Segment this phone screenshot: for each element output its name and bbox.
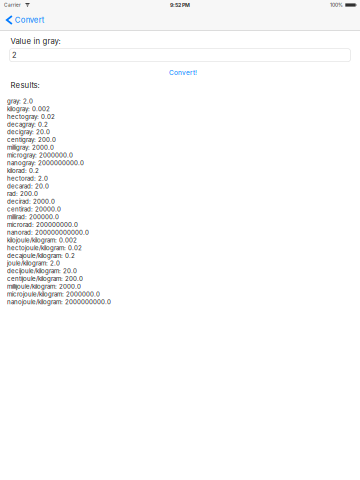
staticText: millijoule/kilogram: 2000.0 (7, 283, 81, 290)
staticText: 9:52 PM (170, 2, 190, 8)
staticText: microrad: 200000000.0 (7, 221, 78, 228)
staticText: decirad: 2000.0 (7, 198, 55, 205)
staticText: millirad: 200000.0 (7, 213, 59, 221)
staticText: kilogray: 0.002 (7, 105, 50, 113)
staticText: 100% (330, 2, 343, 8)
staticText: decajoule/kilogram: 0.2 (7, 252, 75, 259)
button[interactable]: 2 (9, 49, 350, 62)
staticText: centijoule/kilogram: 200.0 (7, 275, 83, 282)
staticText: 2 (12, 51, 17, 60)
staticText: Value in gray: (10, 36, 60, 46)
staticText: decigray: 20.0 (7, 128, 50, 136)
staticText: kilorad: 0.2 (7, 167, 39, 174)
staticText: microgray: 2000000.0 (7, 152, 73, 159)
staticText: nanogray: 2000000000.0 (7, 159, 84, 167)
staticText: hectogray: 0.02 (7, 113, 55, 120)
staticText: gray: 2.0 (7, 97, 33, 105)
staticText: microjoule/kilogram: 2000000.0 (7, 290, 100, 298)
staticText: Convert! (169, 69, 197, 77)
staticText: decarad: 20.0 (7, 182, 49, 190)
staticText: hectorad: 2.0 (7, 175, 48, 182)
button[interactable]: Convert! (166, 68, 200, 78)
staticText: joule/kilogram: 2.0 (7, 260, 60, 267)
staticText: decagray: 0.2 (7, 121, 48, 128)
staticText: Results: (10, 81, 39, 90)
staticText: hectojoule/kilogram: 0.02 (7, 244, 82, 252)
staticText: milligray: 2000.0 (7, 144, 54, 151)
staticText: Convert (15, 15, 45, 25)
staticText: nanorad: 200000000000.0 (7, 229, 89, 236)
staticText: decijoule/kilogram: 20.0 (7, 267, 77, 275)
staticText: kilojoule/kilogram: 0.002 (7, 236, 77, 244)
button[interactable]: Convert (0, 10, 50, 30)
staticText: rad: 200.0 (7, 190, 38, 198)
staticText: centirad: 20000.0 (7, 206, 61, 213)
staticText: Carrier (4, 2, 21, 8)
staticText: centigray: 200.0 (7, 136, 56, 143)
staticText: nanojoule/kilogram: 2000000000.0 (7, 298, 111, 306)
